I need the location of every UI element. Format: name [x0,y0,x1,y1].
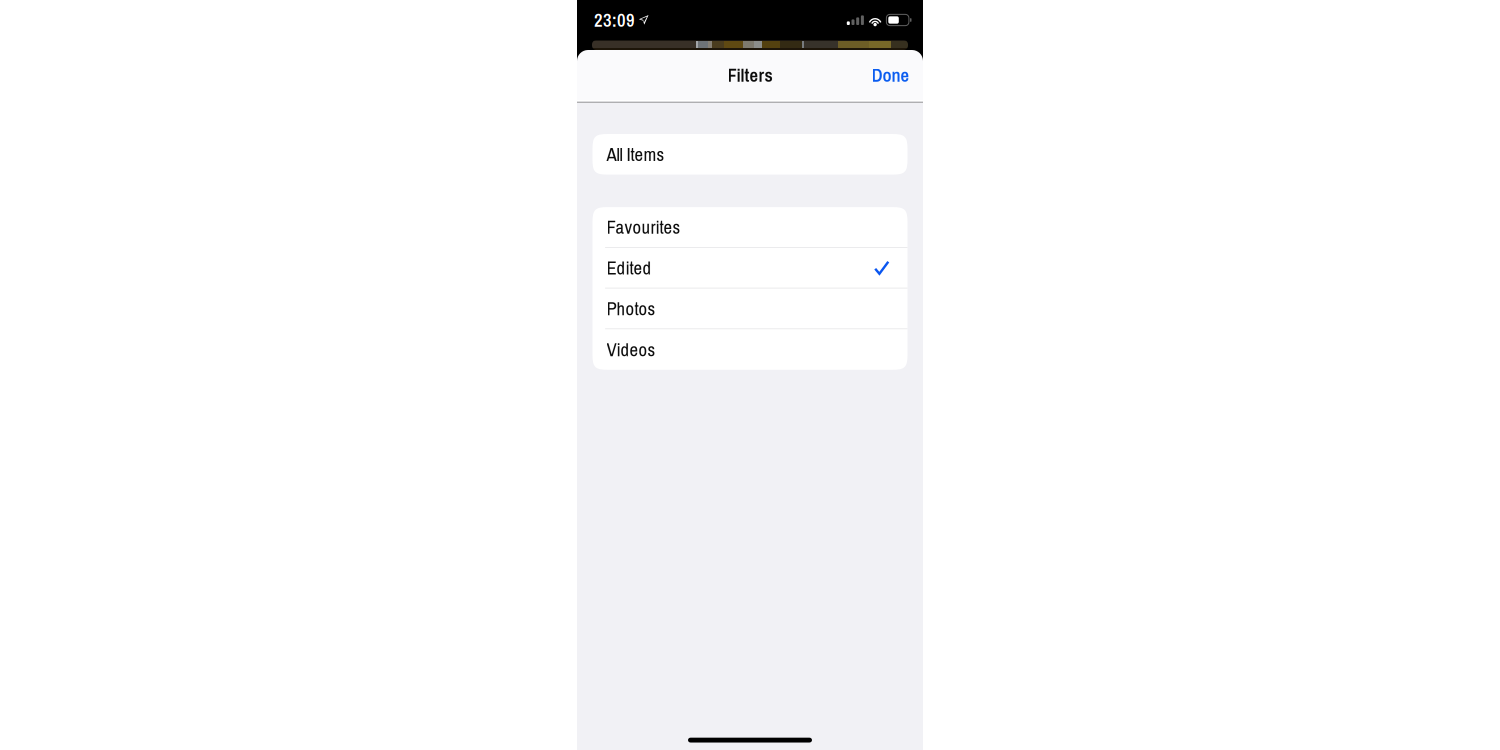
button[interactable]: Done [858,50,923,100]
staticText: Photos [606,296,655,321]
staticText: Edited [606,255,651,280]
button[interactable]: Videos [592,329,907,370]
staticText: Videos [606,337,655,362]
button[interactable]: Photos [592,288,907,329]
staticText: Favourites [606,214,680,240]
staticText: 23:09 [594,7,635,32]
staticText: Filters [727,62,772,87]
button[interactable]: All Items [592,134,907,175]
staticText: Done [871,62,909,87]
staticText: All Items [606,142,664,167]
button[interactable]: Favourites [592,207,907,248]
button[interactable]: Edited [592,248,907,288]
